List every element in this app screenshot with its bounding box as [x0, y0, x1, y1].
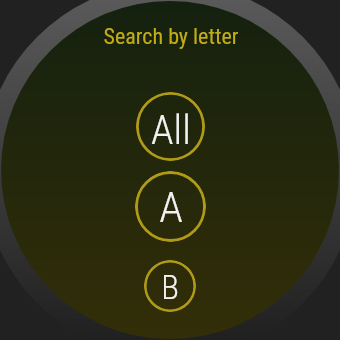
button[interactable]: Filter by B [144, 260, 196, 312]
staticText: Search by letter [1, 24, 340, 340]
button[interactable]: Filter by A [135, 171, 206, 242]
staticText: A [159, 182, 183, 232]
button[interactable]: Filter by All [136, 92, 205, 161]
staticText: B [161, 268, 179, 307]
staticText: All [151, 106, 191, 154]
